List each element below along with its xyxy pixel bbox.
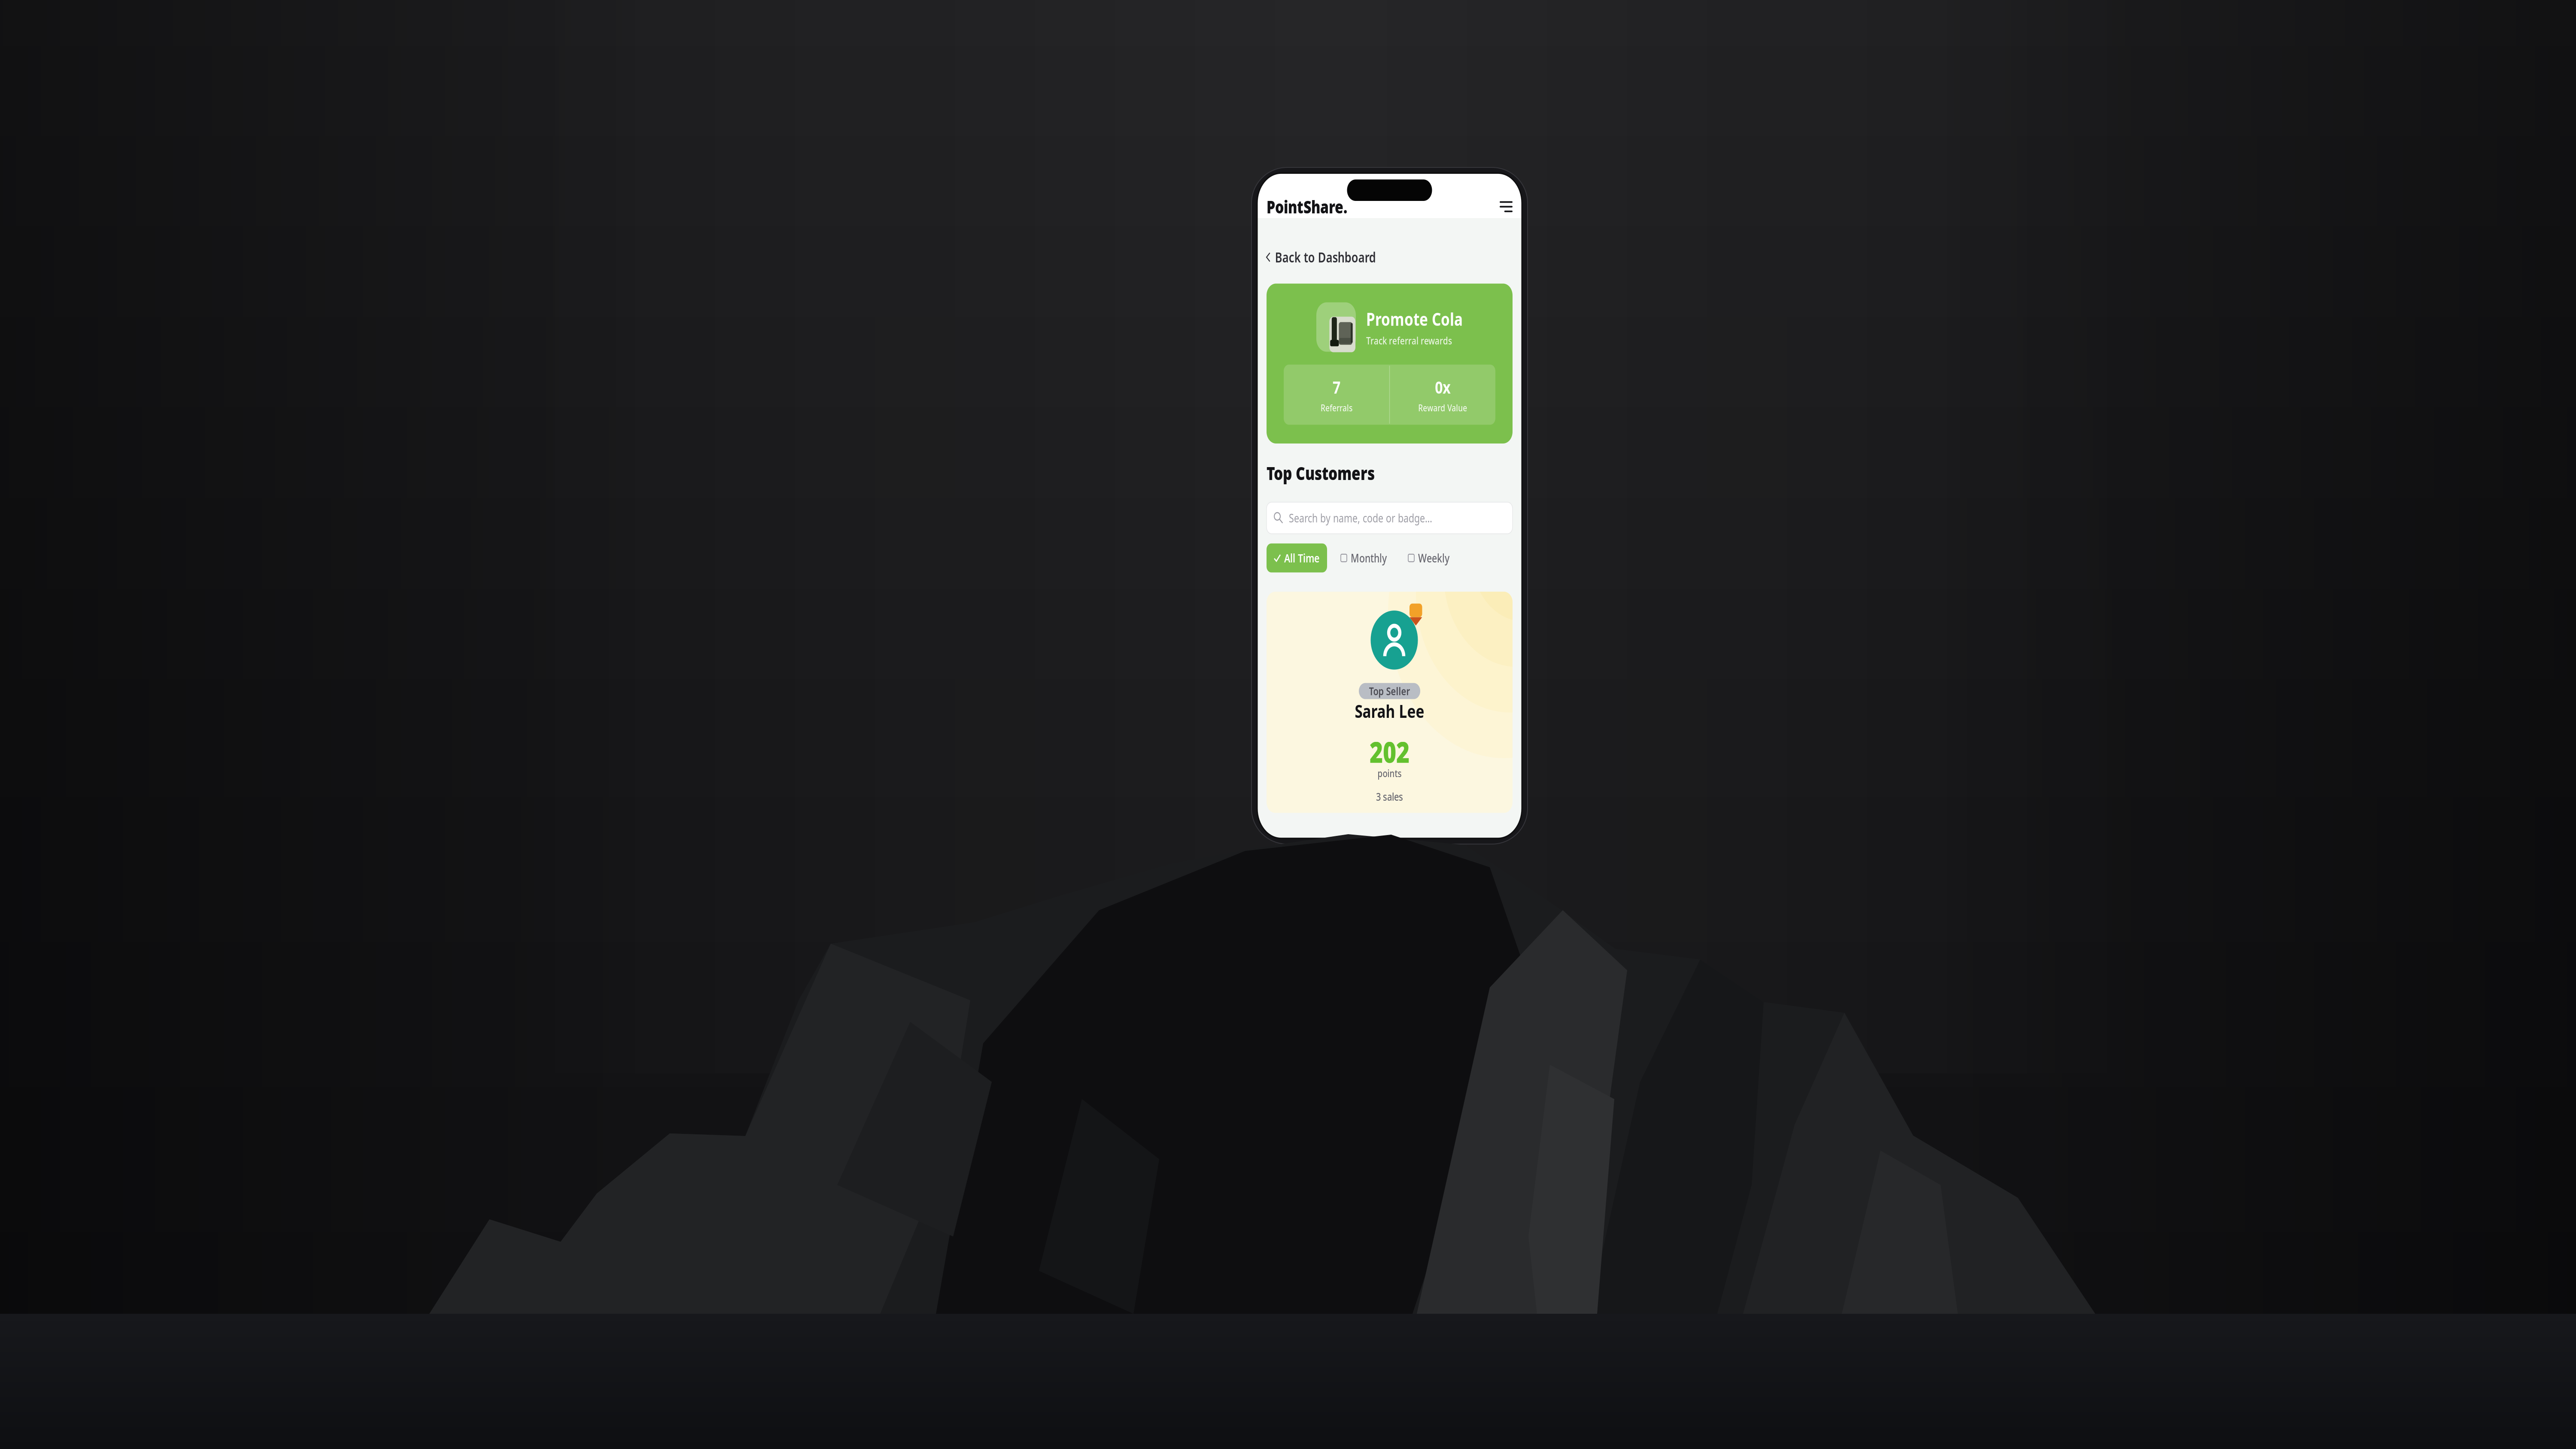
button[interactable]: Monthly (1333, 469, 1394, 493)
staticText: 0x (1435, 335, 1450, 353)
button[interactable]: Top Seller (1267, 508, 1513, 685)
button[interactable]: Promote Cola (1267, 261, 1513, 389)
button[interactable]: Search by name, code or badge… (1267, 436, 1513, 462)
staticText: Promote Cola (1366, 280, 1463, 299)
staticText: All Time (1284, 475, 1319, 487)
staticText: Reward Value (1418, 356, 1467, 366)
staticText: 3 sales (1376, 666, 1403, 678)
staticText: points (1378, 648, 1402, 658)
staticText: Top Seller (1369, 582, 1410, 593)
button[interactable]: Menu (1496, 191, 1516, 209)
staticText: Sarah Lee (1355, 594, 1424, 613)
button[interactable]: All Time (1267, 469, 1327, 493)
staticText: Search by name, code or badge… (1289, 443, 1432, 455)
staticText: 7 (1333, 335, 1340, 353)
staticText: PointShare. (1267, 191, 1347, 209)
staticText: Monthly (1351, 475, 1387, 487)
staticText: Top Customers (1267, 404, 1375, 423)
button[interactable]: Back to Dashboard (1257, 209, 1522, 261)
staticText: Referrals (1321, 356, 1352, 366)
staticText: 202 (1370, 621, 1410, 651)
